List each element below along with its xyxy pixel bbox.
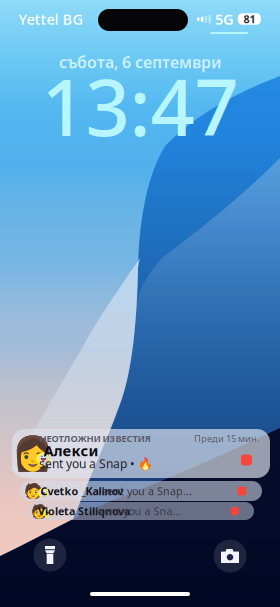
staticText: 🧑 bbox=[30, 503, 47, 519]
staticText: 🧑 bbox=[24, 483, 42, 499]
staticText: 👻 bbox=[36, 453, 49, 465]
staticText: Cvetko _Kalinov bbox=[40, 484, 123, 498]
button[interactable]: 👩 bbox=[12, 429, 270, 478]
staticText: Преди 15 мин. bbox=[194, 432, 260, 445]
staticText: Yettel BG bbox=[18, 9, 83, 29]
staticText: Violeta Stiliqnova bbox=[38, 504, 130, 518]
button[interactable]: Flashlight bbox=[28, 533, 72, 577]
button[interactable]: 🧑 bbox=[28, 502, 254, 520]
staticText: събота, 6 септември bbox=[59, 51, 221, 73]
staticText: 👻 bbox=[38, 488, 48, 497]
staticText: 5G bbox=[215, 9, 234, 29]
staticText: 81 bbox=[243, 12, 255, 26]
staticText: sent you a Snap • 🔥 bbox=[39, 455, 153, 471]
button[interactable]: 🧑 bbox=[20, 481, 262, 501]
staticText: НЕОТЛОЖНИ ИЗВЕСТИЯ bbox=[39, 432, 150, 445]
button[interactable]: Camera bbox=[208, 534, 252, 578]
staticText: sent you a Snap... bbox=[102, 484, 192, 498]
staticText: 👻 bbox=[44, 509, 52, 517]
staticText: sent you a Sna... bbox=[98, 504, 181, 518]
staticText: 13:47 bbox=[41, 55, 238, 157]
staticText: 👩 bbox=[11, 434, 53, 473]
staticText: Алекси bbox=[43, 441, 98, 460]
